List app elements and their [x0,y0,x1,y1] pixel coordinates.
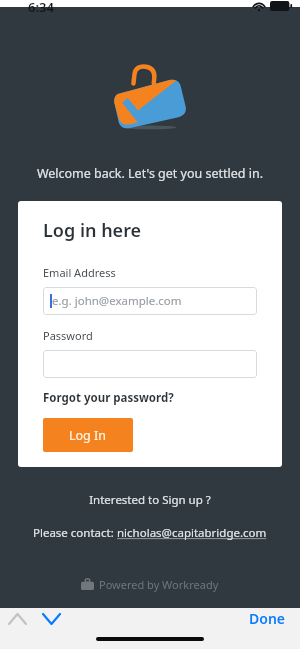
staticText: Please contact: [33,525,117,541]
staticText: Welcome back. Let's get you settled in. [0,165,300,182]
staticText: nicholas@capitabridge.com [117,525,267,541]
staticText: Forgot your password? [43,390,174,406]
button[interactable] [43,350,257,378]
button[interactable]: Log In [43,418,133,452]
staticText: 6:34 [28,0,54,14]
button[interactable]: Next field [34,605,68,633]
button[interactable]: nicholas@capitabridge.com [117,525,267,541]
button[interactable]: Done [235,604,300,633]
staticText: Email Address [43,265,116,280]
staticText: Powered by Workready [99,577,219,592]
staticText: Password [43,328,93,343]
button[interactable]: Forgot your password? [43,390,174,406]
button[interactable]: e.g. john@example.com [43,287,257,315]
staticText: Interested to Sign up ? [0,492,300,508]
staticText: Log In [69,427,107,444]
staticText: e.g. john@example.com [52,293,182,309]
staticText: Log in here [43,218,142,243]
staticText: Done [249,609,286,628]
button[interactable]: Previous field [0,605,34,633]
